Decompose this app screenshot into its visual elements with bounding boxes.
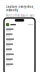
staticText: Notes that stay in sync [5,14,34,17]
staticText: Capture every idea, instantly [5,5,34,12]
